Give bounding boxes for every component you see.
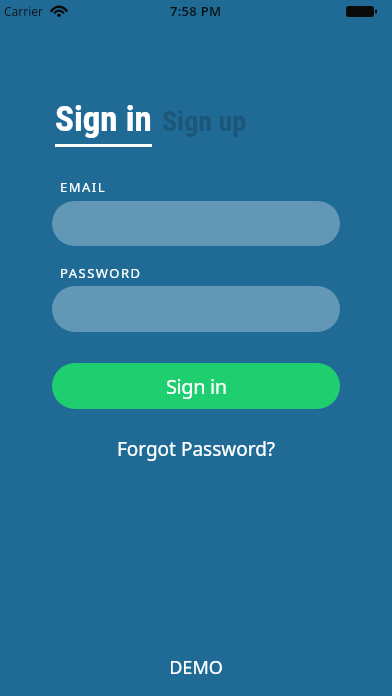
staticText: 7:58 PM [170,2,222,20]
staticText: EMAIL [60,178,107,196]
staticText: PASSWORD [60,264,142,282]
button[interactable] [52,201,340,246]
button[interactable]: Forgot Password? [0,436,392,462]
button[interactable]: Sign in [52,363,340,409]
button[interactable]: Sign in [55,99,152,147]
button[interactable]: Sign up [162,105,247,138]
staticText: Sign in [166,373,227,400]
button[interactable]: DEMO [0,655,392,696]
staticText: Sign in [55,99,152,140]
staticText: Carrier [4,3,44,19]
button[interactable] [52,286,340,332]
